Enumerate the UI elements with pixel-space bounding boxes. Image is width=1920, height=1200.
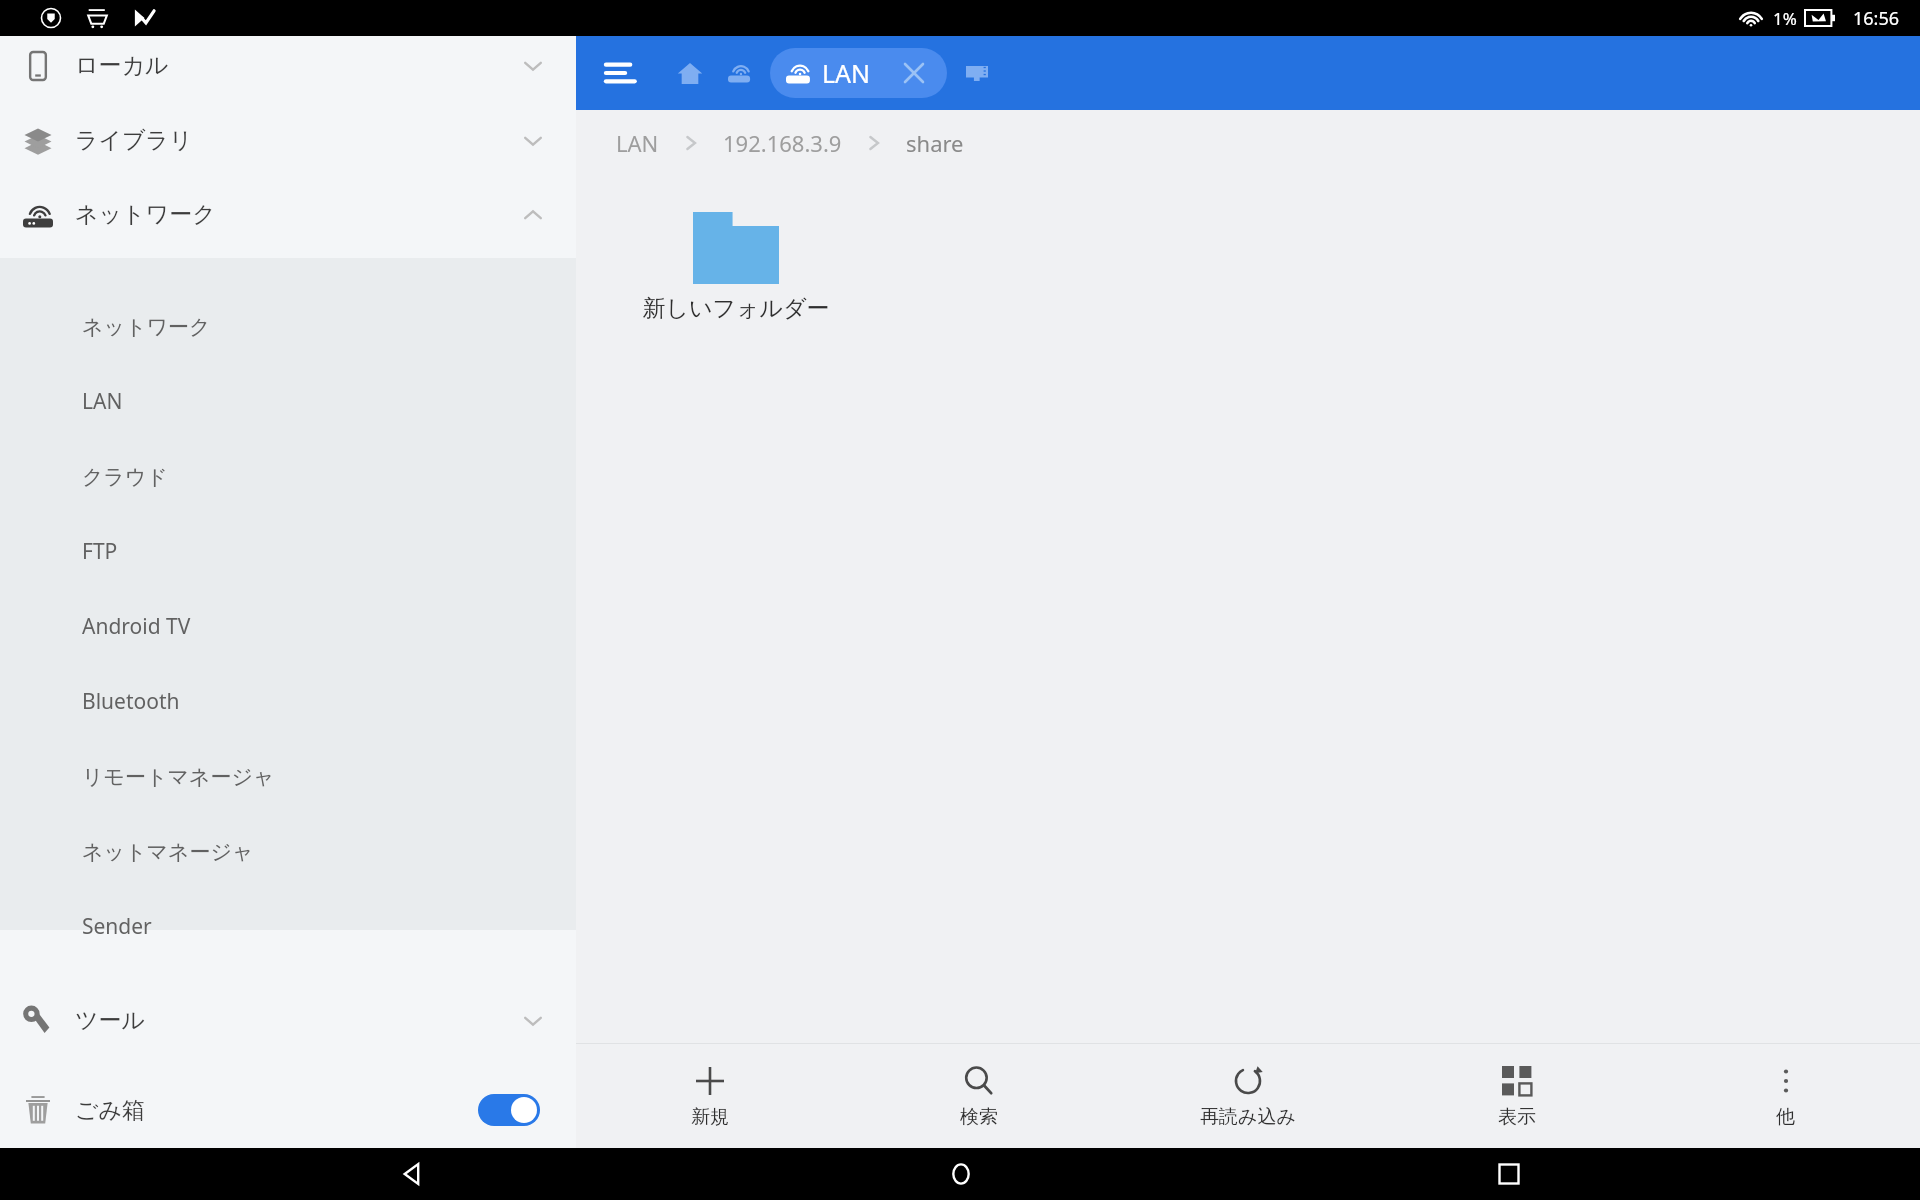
button[interactable]: share <box>906 128 964 158</box>
staticText: リモートマネージャ <box>82 764 275 790</box>
button[interactable]: LAN <box>616 128 659 158</box>
staticText: Bluetooth <box>82 687 180 716</box>
staticText: Android TV <box>82 612 191 641</box>
button[interactable]: Network tab <box>718 51 762 95</box>
button[interactable]: 新しいフォルダー <box>636 204 836 323</box>
button[interactable]: ネットワーク <box>0 289 576 364</box>
button[interactable]: リモートマネージャ <box>0 739 576 814</box>
staticText: 他 <box>1776 1105 1795 1129</box>
button[interactable]: ネットワーク <box>0 177 576 252</box>
button[interactable]: ライブラリ <box>0 103 576 178</box>
staticText: LAN <box>82 387 123 416</box>
staticText: ライブラリ <box>75 126 193 155</box>
button[interactable]: Sender <box>0 889 576 964</box>
staticText: クラウド <box>82 464 168 490</box>
staticText: 再読み込み <box>1200 1105 1296 1129</box>
button[interactable]: New tab <box>955 51 999 95</box>
button[interactable]: Menu <box>590 43 650 103</box>
button[interactable]: ツール <box>0 983 576 1058</box>
button[interactable]: Close tab <box>897 56 931 90</box>
button[interactable]: ローカル <box>0 28 576 103</box>
button[interactable]: LAN <box>0 364 576 439</box>
staticText: ネットマネージャ <box>82 839 254 865</box>
staticText: ごみ箱 <box>75 1096 146 1125</box>
staticText: ネットワーク <box>82 314 211 340</box>
button[interactable]: Home <box>668 51 712 95</box>
staticText: 1% <box>1773 7 1797 30</box>
button[interactable]: ごみ箱 <box>0 1074 576 1146</box>
button[interactable]: 表示 <box>1382 1044 1651 1148</box>
staticText: ツール <box>75 1006 146 1035</box>
button[interactable]: Back <box>275 1148 550 1200</box>
button[interactable]: 新規 <box>576 1044 844 1148</box>
staticText: LAN <box>822 56 871 90</box>
button[interactable]: LAN <box>770 48 947 98</box>
staticText: 新しいフォルダー <box>642 294 830 323</box>
button[interactable]: Home <box>824 1148 1098 1200</box>
staticText: 16:56 <box>1853 6 1900 31</box>
staticText: FTP <box>82 537 118 566</box>
staticText: 表示 <box>1498 1105 1536 1129</box>
button[interactable]: 192.168.3.9 <box>723 128 842 158</box>
button[interactable] <box>478 1094 540 1126</box>
button[interactable]: クラウド <box>0 439 576 514</box>
staticText: 新規 <box>691 1105 729 1129</box>
staticText: ローカル <box>75 51 169 80</box>
button[interactable]: 検索 <box>844 1044 1113 1148</box>
button[interactable]: 再読み込み <box>1113 1044 1382 1148</box>
staticText: Sender <box>82 912 152 941</box>
button[interactable]: Android TV <box>0 589 576 664</box>
button[interactable]: Bluetooth <box>0 664 576 739</box>
button[interactable]: ネットマネージャ <box>0 814 576 889</box>
button[interactable]: FTP <box>0 514 576 589</box>
staticText: ネットワーク <box>75 200 216 229</box>
button[interactable]: Recents <box>1372 1148 1646 1200</box>
staticText: 検索 <box>960 1105 998 1129</box>
button[interactable]: 他 <box>1651 1044 1920 1148</box>
